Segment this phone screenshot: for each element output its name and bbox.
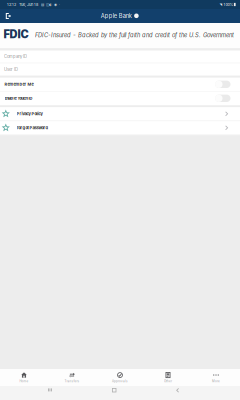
staticText: Privacy Policy xyxy=(17,111,43,116)
staticText: ◥ xyxy=(219,2,222,6)
button[interactable]: Recents xyxy=(48,388,64,398)
button[interactable]: Company ID xyxy=(0,50,240,63)
button[interactable]: Other xyxy=(144,369,192,386)
button[interactable]: Enable Touch ID xyxy=(0,92,240,106)
staticText: 100% xyxy=(222,2,233,7)
staticText: Approvals xyxy=(112,379,128,383)
staticText: Home xyxy=(19,379,28,383)
staticText: Apple Bank xyxy=(101,12,132,19)
staticText: User ID xyxy=(4,67,18,72)
button[interactable]: Home xyxy=(112,388,128,398)
button[interactable]: Back xyxy=(176,388,192,398)
staticText: Company ID xyxy=(4,54,27,59)
button[interactable]: Remember Me xyxy=(0,78,240,92)
button[interactable]: Forgot Password xyxy=(0,121,240,135)
staticText: Other xyxy=(164,379,172,383)
button[interactable]: Privacy Policy xyxy=(0,107,240,121)
staticText: Transfers xyxy=(64,379,79,383)
staticText: ▤ ◫◐ ◉ · xyxy=(38,2,60,7)
staticText: More xyxy=(212,379,220,383)
staticText: FDIC-Insured - Backed by the full faith … xyxy=(35,32,234,39)
staticText: Enable Touch ID xyxy=(5,96,33,101)
staticText: 12:12 Tue, Jun 18 xyxy=(7,2,38,7)
staticText: Remember Me xyxy=(5,82,34,87)
button[interactable]: Transfers xyxy=(48,369,96,386)
button[interactable]: More xyxy=(192,369,240,386)
staticText: FDIC xyxy=(4,28,29,41)
button[interactable]: Approvals xyxy=(96,369,144,386)
button[interactable]: Sign out xyxy=(0,9,16,23)
staticText: Forgot Password xyxy=(17,125,49,130)
button[interactable]: Home xyxy=(0,369,48,386)
button[interactable]: User ID xyxy=(0,63,240,76)
